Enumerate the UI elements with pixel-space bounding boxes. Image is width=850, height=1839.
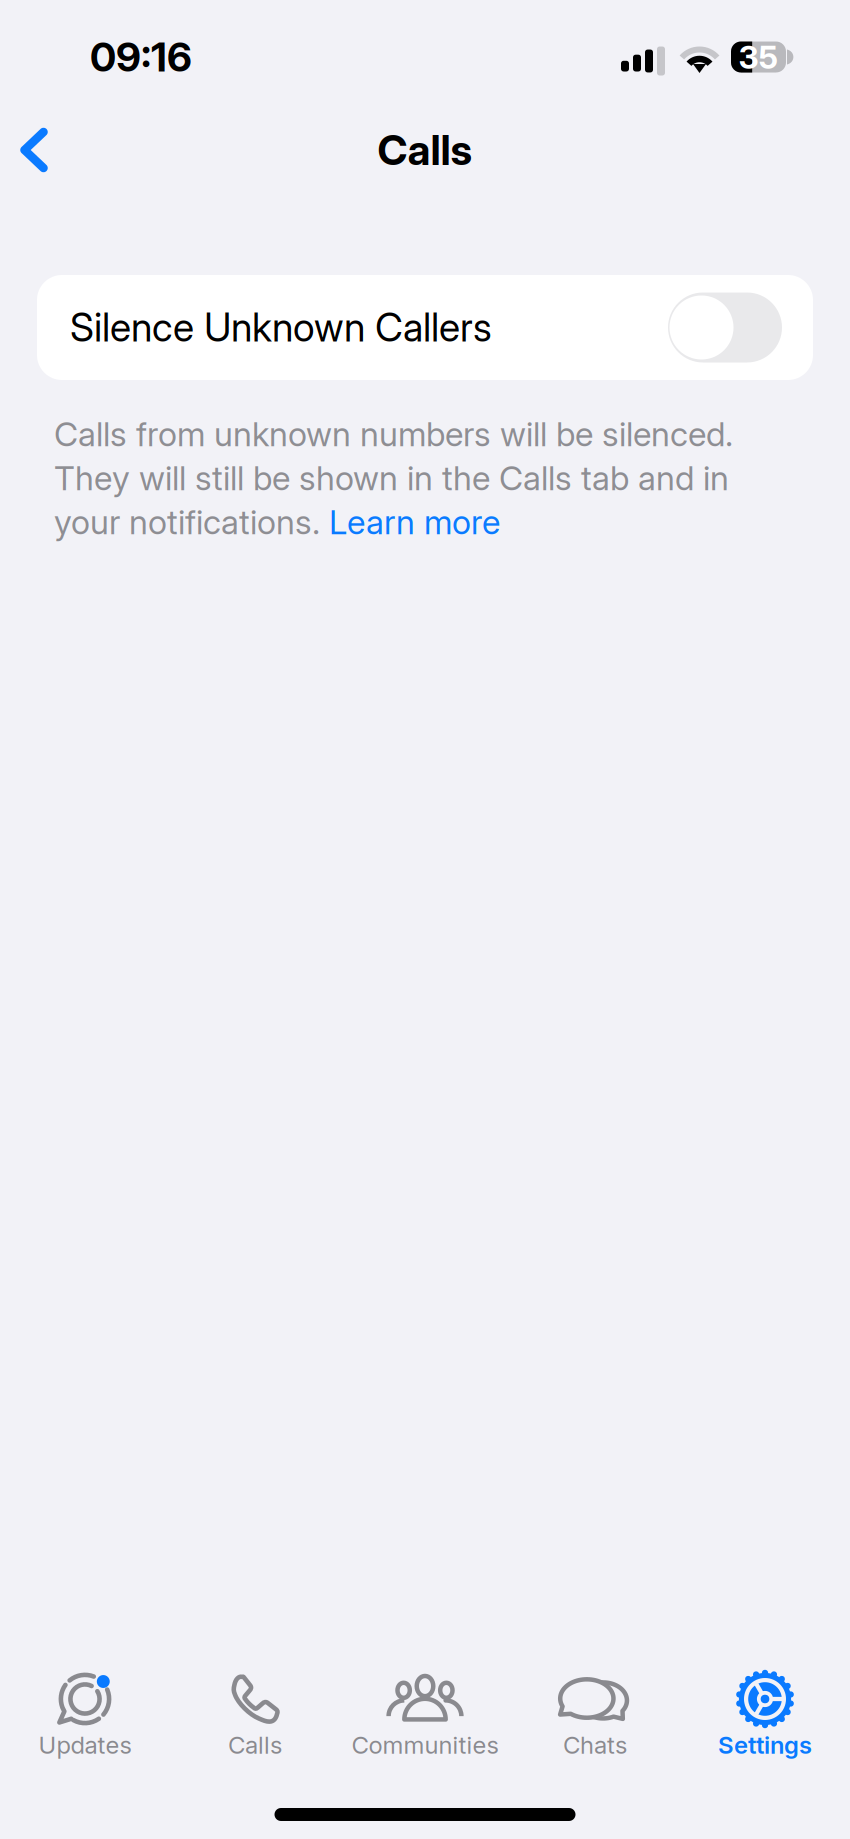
staticText: Silence Unknown Callers bbox=[70, 304, 492, 351]
button[interactable]: Learn more bbox=[329, 502, 500, 542]
staticText: 09:16 bbox=[90, 33, 192, 81]
button[interactable]: Chats bbox=[510, 1670, 680, 1762]
staticText: Updates bbox=[38, 1730, 131, 1759]
staticText: They will still be shown in the Calls ta… bbox=[54, 458, 729, 498]
button[interactable]: Back bbox=[6, 111, 62, 189]
staticText: 35 bbox=[738, 38, 778, 76]
staticText: Calls from unknown numbers will be silen… bbox=[54, 414, 733, 454]
staticText: your notifications. bbox=[54, 502, 329, 542]
button[interactable]: Silence Unknown Callers bbox=[37, 275, 813, 380]
staticText: Calls bbox=[377, 125, 472, 175]
staticText: Calls bbox=[228, 1730, 282, 1759]
staticText: Communities bbox=[351, 1730, 498, 1759]
button[interactable]: Updates bbox=[0, 1670, 170, 1762]
button[interactable]: Settings bbox=[680, 1670, 850, 1762]
staticText: Chats bbox=[563, 1730, 627, 1759]
button[interactable]: Calls bbox=[170, 1670, 340, 1762]
staticText: Learn more bbox=[329, 502, 500, 542]
button[interactable]: Communities bbox=[340, 1670, 510, 1762]
staticText: Settings bbox=[718, 1730, 812, 1759]
